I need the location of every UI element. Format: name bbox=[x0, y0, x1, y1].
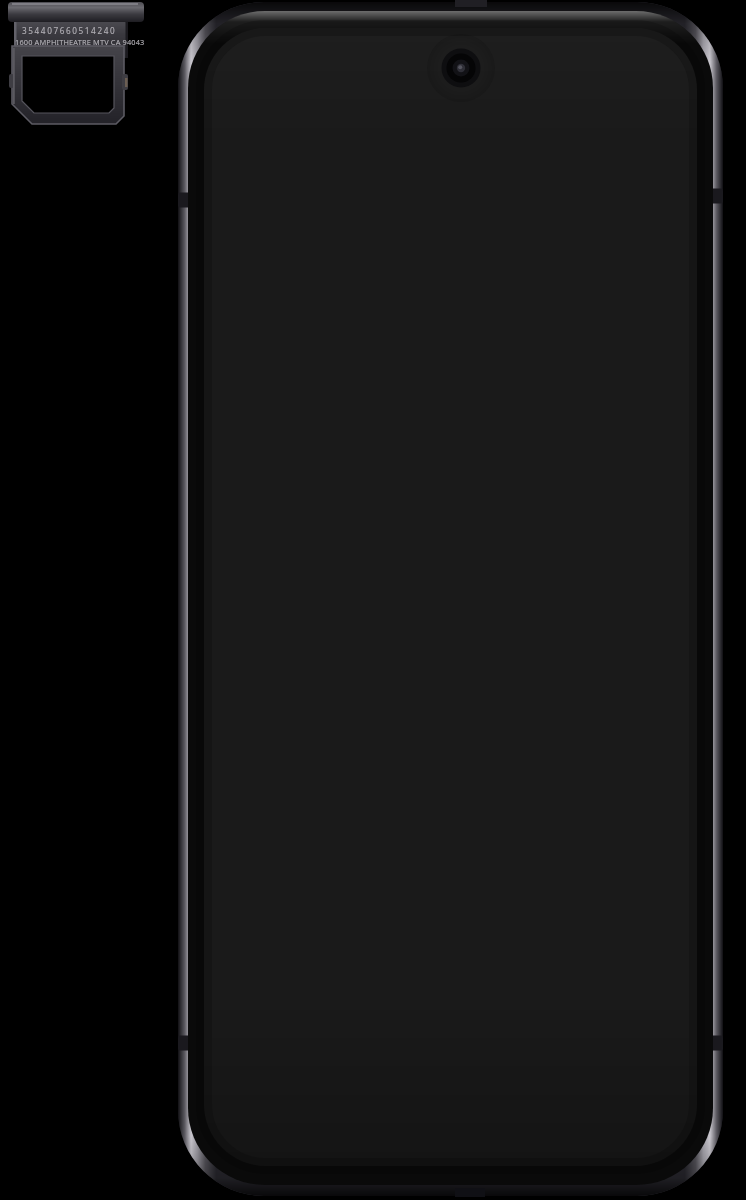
other: Phone with SIM tray ejected bbox=[0, 0, 746, 1200]
